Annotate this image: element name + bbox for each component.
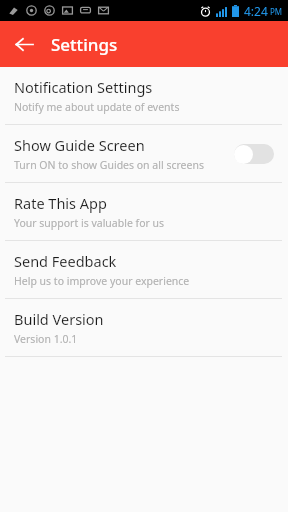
staticText: Turn ON to show Guides on all screens — [14, 158, 204, 172]
staticText: Notify me about update of events — [14, 100, 180, 114]
button[interactable]: Show Guide Screen — [0, 125, 288, 182]
staticText: 4:24 — [244, 3, 268, 19]
button[interactable]: Build Version — [0, 299, 288, 356]
staticText: Show Guide Screen — [14, 135, 145, 155]
staticText: PM — [270, 6, 283, 17]
staticText: Notification Settings — [14, 77, 153, 97]
staticText: Send Feedback — [14, 251, 117, 271]
staticText: Help us to improve your experience — [14, 274, 190, 288]
button[interactable]: Back — [8, 28, 40, 60]
staticText: Settings — [51, 33, 118, 56]
button[interactable]: Send Feedback — [0, 241, 288, 298]
staticText: Rate This App — [14, 193, 107, 213]
button[interactable]: Show Guide Screen toggle — [234, 141, 274, 167]
button[interactable]: Rate This App — [0, 183, 288, 240]
staticText: Your support is valuable for us — [14, 216, 165, 230]
staticText: Build Version — [14, 309, 104, 329]
button[interactable]: Notification Settings — [0, 67, 288, 124]
staticText: Version 1.0.1 — [14, 332, 78, 346]
